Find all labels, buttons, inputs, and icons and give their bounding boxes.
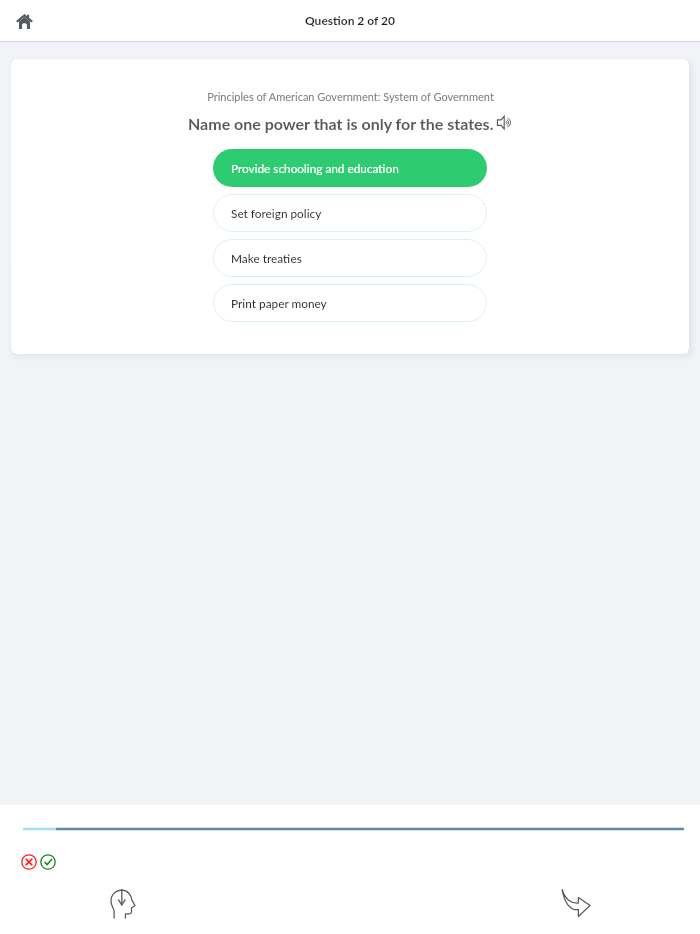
staticText: Make treaties <box>231 251 302 265</box>
button[interactable]: Play audio <box>496 115 513 130</box>
button[interactable]: Make treaties <box>213 239 487 277</box>
button[interactable]: Provide schooling and education <box>213 149 487 187</box>
staticText: Principles of American Government: Syste… <box>207 90 494 103</box>
button[interactable]: Correct answers <box>40 854 56 870</box>
button[interactable]: Incorrect answers <box>21 854 37 870</box>
staticText: Set foreign policy <box>231 206 322 220</box>
staticText: Provide schooling and education <box>231 161 399 175</box>
button[interactable]: Home <box>9 6 39 36</box>
staticText: Question 2 of 20 <box>305 13 395 27</box>
button[interactable]: Set foreign policy <box>213 194 487 232</box>
staticText: Name one power that is only for the stat… <box>188 114 494 133</box>
button[interactable]: Memorize <box>105 885 141 921</box>
button[interactable]: Print paper money <box>213 284 487 322</box>
button[interactable]: Skip <box>558 885 594 921</box>
staticText: Print paper money <box>231 296 327 310</box>
